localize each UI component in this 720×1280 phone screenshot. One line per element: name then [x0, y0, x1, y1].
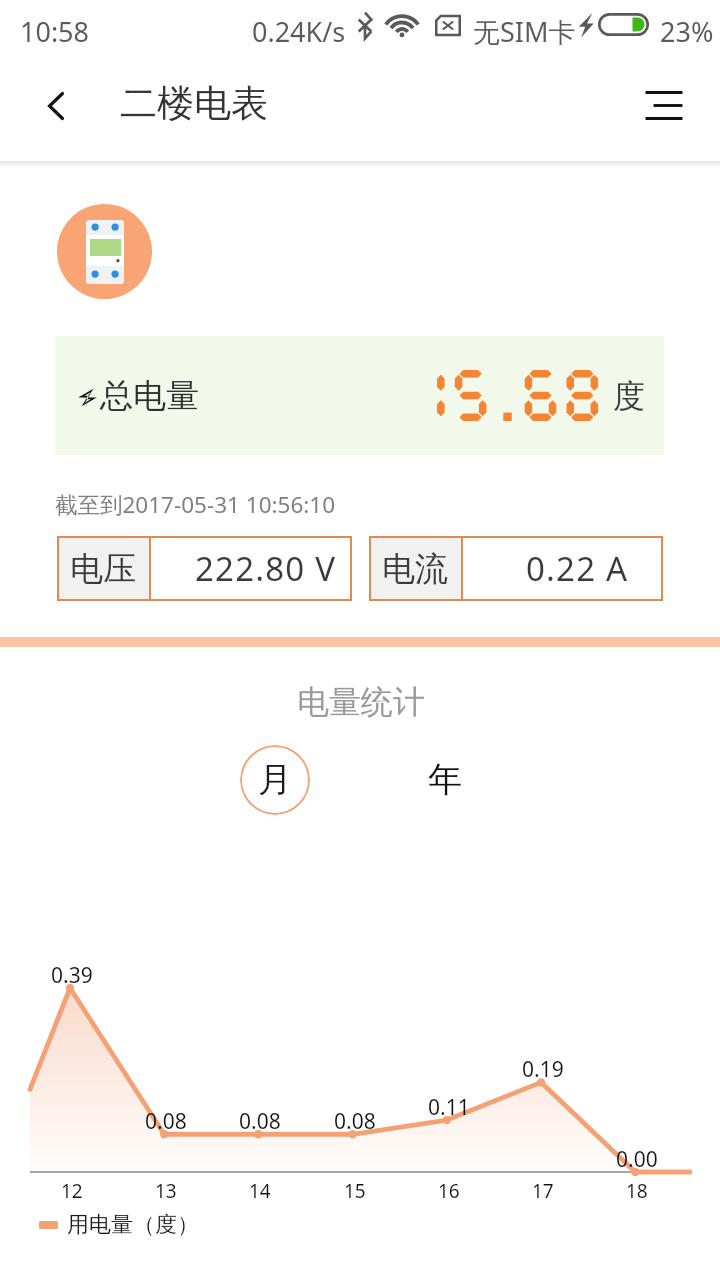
staticText: 0.11 [428, 1093, 470, 1122]
button[interactable]: 电流 [369, 536, 663, 601]
staticText: 222.80 V [195, 546, 337, 591]
staticText: 16 [438, 1178, 460, 1204]
staticText: 0.08 [145, 1107, 187, 1136]
staticText: 23% [660, 13, 714, 50]
staticText: 截至到2017-05-31 10:56:10 [55, 489, 336, 520]
staticText: 18 [626, 1178, 648, 1204]
staticText: 0.08 [239, 1107, 281, 1136]
staticText: 12 [61, 1178, 83, 1204]
button[interactable]: Back [20, 78, 82, 140]
staticText: 15 [344, 1178, 366, 1204]
staticText: 总电量 [100, 375, 199, 417]
button[interactable]: 月 [240, 745, 310, 815]
staticText: 0.08 [334, 1107, 376, 1136]
staticText: 电压 [70, 548, 136, 590]
staticText: 电流 [382, 548, 448, 590]
staticText: 0.22 A [526, 546, 629, 591]
staticText: 电量统计 [297, 682, 425, 722]
button[interactable]: 电压 [57, 536, 352, 601]
staticText: 17 [532, 1178, 554, 1204]
staticText: 用电量（度） [67, 1211, 199, 1239]
staticText: 年 [428, 758, 462, 801]
staticText: 0.39 [51, 961, 93, 990]
staticText: 度 [613, 376, 645, 416]
button[interactable]: 年 [410, 745, 480, 815]
staticText: 0.24K/s [252, 13, 346, 50]
staticText: 二楼电表 [120, 80, 268, 127]
staticText: 无SIM卡 [473, 13, 576, 50]
button[interactable]: Menu [632, 76, 696, 142]
staticText: 0.00 [616, 1145, 658, 1174]
staticText: 10:58 [20, 13, 90, 50]
staticText: 月 [258, 758, 292, 801]
button[interactable]: 总电量 [55, 336, 664, 455]
staticText: 0.19 [522, 1055, 564, 1084]
staticText: 14 [249, 1178, 271, 1204]
staticText: 13 [155, 1178, 177, 1204]
